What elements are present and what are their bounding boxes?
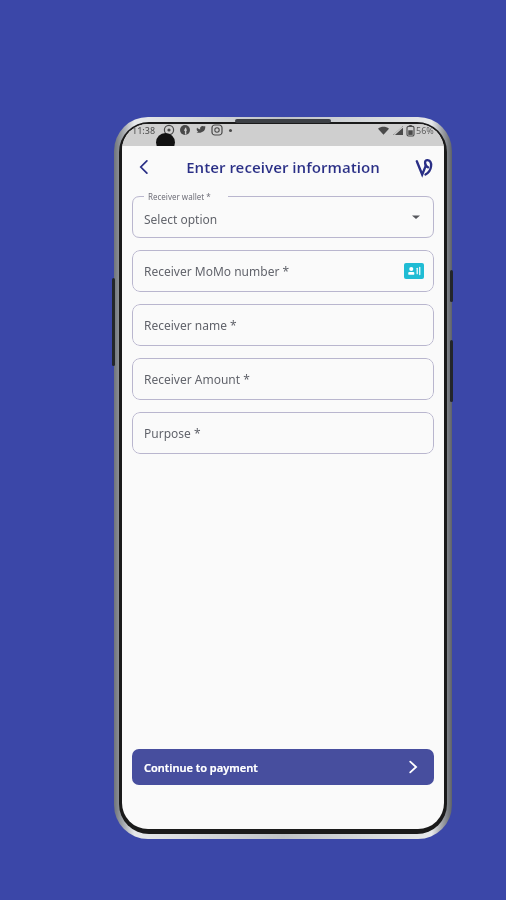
staticText: Receiver MoMo number * [144, 263, 290, 279]
button[interactable]: Receiver MoMo number * [132, 250, 434, 292]
button[interactable]: Select option [132, 196, 434, 238]
button[interactable]: Continue to payment [132, 749, 434, 785]
staticText: Receiver name * [144, 317, 237, 333]
button[interactable]: Purpose * [132, 412, 434, 454]
button[interactable]: App logo [410, 153, 438, 181]
staticText: 11:38 [132, 124, 156, 136]
staticText: Enter receiver information [186, 157, 380, 177]
button[interactable]: Receiver name * [132, 304, 434, 346]
button[interactable]: Pick contact [404, 263, 424, 279]
button[interactable]: Receiver Amount * [132, 358, 434, 400]
staticText: Continue to payment [144, 760, 258, 775]
staticText: 56% [416, 124, 434, 136]
staticText: Select option [144, 211, 218, 227]
staticText: Receiver wallet * [148, 191, 211, 202]
staticText: Receiver Amount * [144, 371, 250, 387]
staticText: Purpose * [144, 425, 201, 441]
button[interactable]: Back [128, 151, 160, 183]
